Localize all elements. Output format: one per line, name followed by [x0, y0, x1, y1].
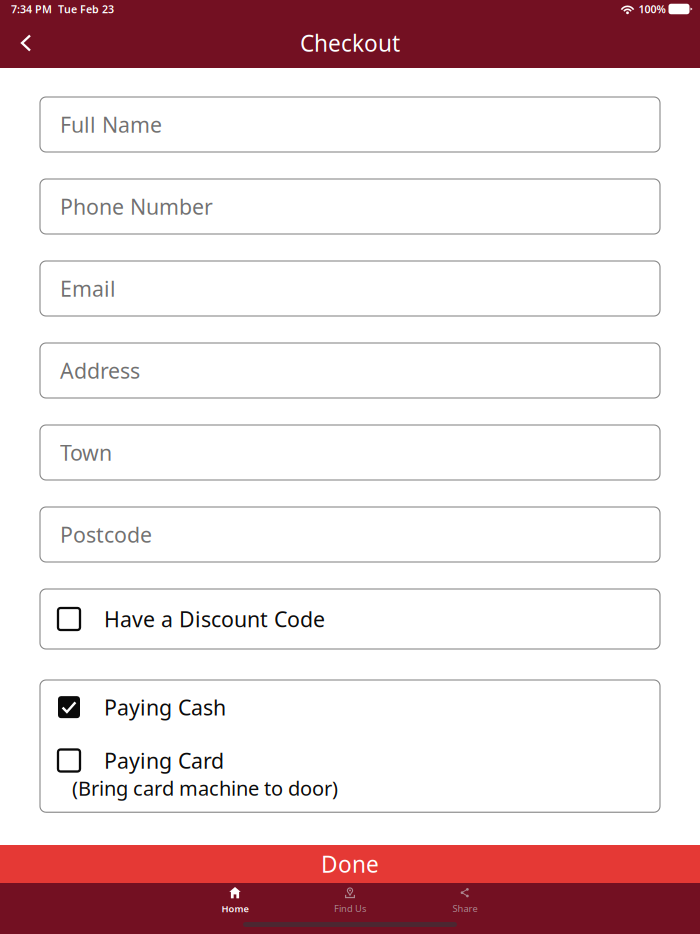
- button[interactable]: Paying Card: [40, 734, 660, 812]
- staticText: Paying Cash: [104, 693, 226, 721]
- button[interactable]: Find Us: [292, 883, 407, 915]
- staticText: Phone Number: [60, 192, 213, 221]
- button[interactable]: Email: [40, 261, 660, 316]
- button[interactable]: Phone Number: [40, 179, 660, 234]
- button[interactable]: Paying Cash: [40, 680, 660, 734]
- staticText: Tue Feb 23: [52, 2, 114, 16]
- button[interactable]: Back: [0, 20, 50, 66]
- button[interactable]: Share: [407, 883, 522, 915]
- button[interactable]: Home: [177, 883, 292, 915]
- staticText: Home: [221, 902, 248, 915]
- staticText: Postcode: [60, 520, 152, 549]
- staticText: Email: [60, 274, 116, 303]
- staticText: Share: [452, 902, 477, 915]
- staticText: 7:34 PM: [11, 2, 52, 16]
- staticText: Have a Discount Code: [104, 605, 325, 633]
- staticText: 100%: [635, 2, 665, 16]
- button[interactable]: Done: [0, 845, 700, 883]
- staticText: Checkout: [300, 28, 400, 58]
- staticText: Paying Card: [104, 746, 224, 775]
- staticText: Full Name: [60, 110, 162, 139]
- button[interactable]: Have a Discount Code: [40, 589, 660, 649]
- staticText: (Bring card machine to door): [72, 775, 338, 801]
- staticText: Find Us: [334, 902, 366, 915]
- button[interactable]: Town: [40, 425, 660, 480]
- staticText: Done: [321, 849, 379, 879]
- staticText: Town: [60, 438, 112, 467]
- button[interactable]: Full Name: [40, 97, 660, 152]
- button[interactable]: Address: [40, 343, 660, 398]
- staticText: Address: [60, 356, 140, 385]
- button[interactable]: Postcode: [40, 507, 660, 562]
